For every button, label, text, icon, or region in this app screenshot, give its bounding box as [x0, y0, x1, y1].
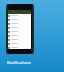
- button[interactable]: [8, 14, 31, 18]
- button[interactable]: [8, 46, 31, 49]
- staticText: Notifications: [7, 60, 31, 65]
- button[interactable]: [8, 34, 31, 38]
- button[interactable]: [8, 38, 31, 42]
- button[interactable]: [8, 30, 31, 34]
- button[interactable]: [8, 18, 31, 22]
- button[interactable]: [8, 26, 31, 30]
- button[interactable]: [8, 22, 31, 26]
- button[interactable]: [8, 42, 31, 46]
